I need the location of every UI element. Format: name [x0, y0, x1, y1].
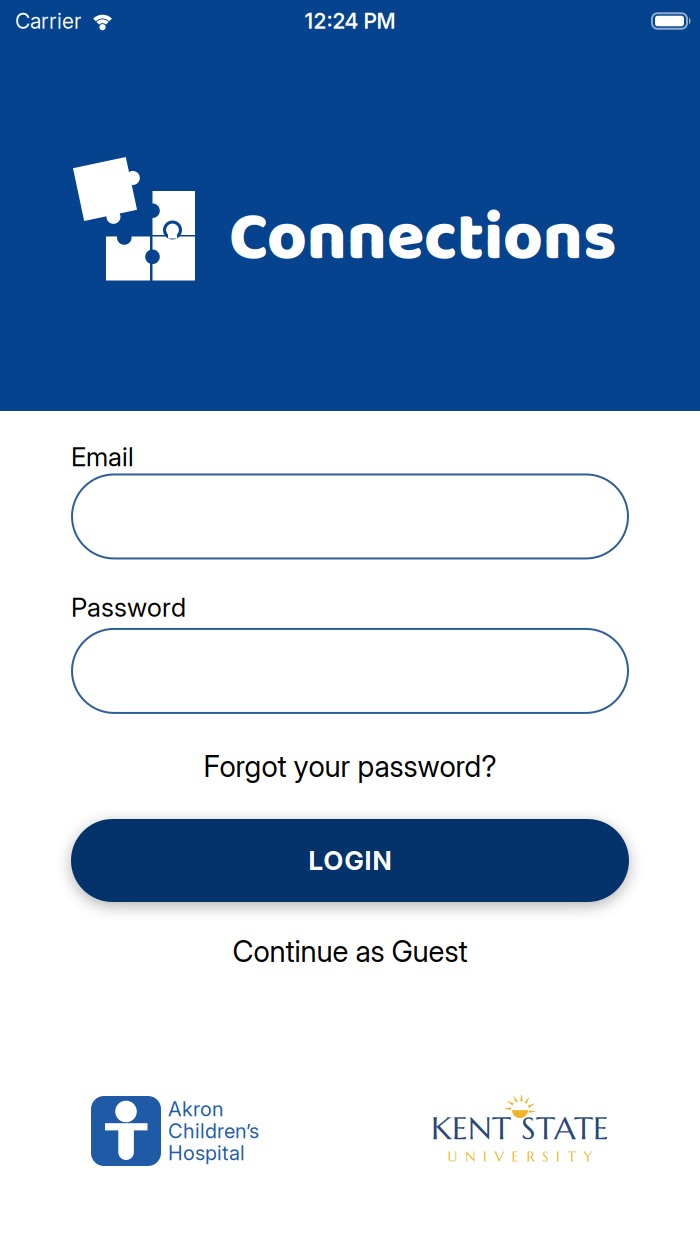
staticText: Continue as Guest [232, 934, 467, 969]
staticText: Forgot your password? [203, 749, 496, 784]
staticText: Connections [229, 184, 616, 293]
staticText: Children’s [168, 1120, 259, 1142]
staticText: Email [71, 441, 134, 472]
staticText: Carrier [15, 8, 81, 34]
staticText: LOGIN [308, 845, 391, 876]
staticText: Akron [168, 1098, 224, 1120]
button[interactable]: LOGIN [0, 819, 700, 902]
staticText: UNIVERSITY [447, 1148, 593, 1165]
staticText: 12:24 PM [304, 8, 395, 34]
button[interactable]: Password [0, 628, 700, 714]
staticText: Hospital [168, 1142, 245, 1164]
staticText: Password [71, 591, 186, 623]
button[interactable]: Continue as Guest [0, 934, 700, 969]
button[interactable]: Email [0, 473, 700, 559]
staticText: KENT STATE [431, 1109, 609, 1147]
button[interactable]: Forgot your password? [0, 749, 700, 784]
